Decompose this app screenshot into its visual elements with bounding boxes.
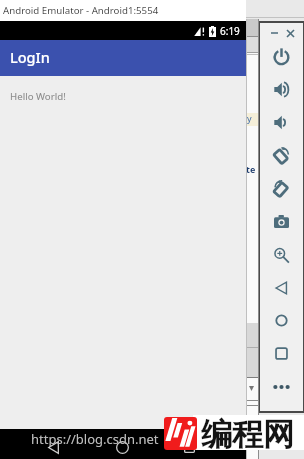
button[interactable]: Home [260, 304, 303, 337]
staticText: Hello World! [10, 90, 66, 103]
staticText: Android Emulator - Android1:5554 [3, 4, 159, 17]
button[interactable]: Volume down [260, 106, 303, 139]
button[interactable]: Recents [184, 442, 195, 453]
button[interactable]: More options [260, 370, 303, 403]
button[interactable]: Back [48, 441, 59, 454]
button[interactable]: Volume up [260, 73, 303, 106]
button[interactable]: Home [116, 441, 129, 454]
button[interactable]: Zoom [260, 238, 303, 271]
staticText: 6:19 [220, 24, 240, 38]
button[interactable]: Rotate right [260, 172, 303, 205]
staticText: y [247, 112, 252, 124]
button[interactable]: Power [260, 40, 303, 73]
staticText: 编程网 [201, 415, 294, 454]
button[interactable]: Screenshot [260, 205, 303, 238]
button[interactable]: Recents [260, 337, 303, 370]
button[interactable]: Minimize [266, 25, 282, 41]
staticText: te [246, 163, 256, 175]
staticText: LogIn [10, 47, 50, 67]
button[interactable]: LogIn [0, 40, 246, 76]
staticText: https://blog.csdn.net [31, 430, 159, 448]
button[interactable]: Rotate left [260, 139, 303, 172]
button[interactable]: Close [282, 25, 298, 41]
button[interactable]: Back [260, 271, 303, 304]
